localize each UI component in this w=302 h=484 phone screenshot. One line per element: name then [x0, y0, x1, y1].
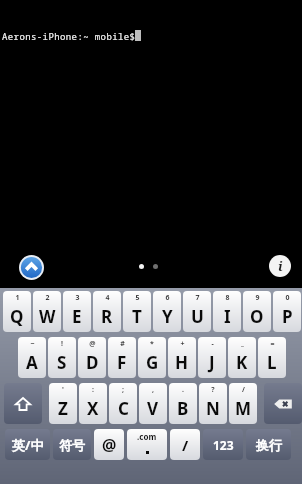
- staticText: B: [177, 397, 189, 420]
- staticText: H: [175, 351, 189, 374]
- button[interactable]: A: [18, 337, 46, 378]
- staticText: 3: [75, 293, 80, 303]
- button[interactable]: H: [168, 337, 196, 378]
- button[interactable]: S: [48, 337, 76, 378]
- staticText: 0: [285, 293, 290, 303]
- button[interactable]: C: [109, 383, 137, 424]
- staticText: Z: [58, 397, 68, 420]
- staticText: V: [147, 397, 159, 420]
- staticText: *: [150, 339, 154, 349]
- staticText: F: [117, 351, 127, 374]
- button[interactable]: F: [108, 337, 136, 378]
- staticText: D: [86, 351, 99, 374]
- staticText: /: [182, 435, 189, 455]
- staticText: 9: [255, 293, 260, 303]
- button[interactable]: .com: [127, 429, 167, 460]
- staticText: 符号: [59, 437, 85, 453]
- staticText: 8: [225, 293, 230, 303]
- button[interactable]: @: [94, 429, 124, 460]
- staticText: Y: [162, 305, 173, 328]
- staticText: U: [191, 305, 204, 328]
- staticText: .: [182, 385, 184, 395]
- staticText: G: [146, 351, 159, 374]
- button[interactable]: 123: [203, 429, 243, 460]
- staticText: M: [235, 397, 252, 420]
- button[interactable]: J: [198, 337, 226, 378]
- staticText: _: [241, 339, 244, 349]
- staticText: J: [209, 351, 215, 374]
- button[interactable]: Shift: [4, 383, 42, 424]
- button[interactable]: D: [78, 337, 106, 378]
- staticText: 4: [105, 293, 110, 303]
- staticText: 2: [45, 293, 50, 303]
- staticText: N: [206, 397, 220, 420]
- button[interactable]: T: [123, 291, 151, 332]
- button[interactable]: G: [138, 337, 166, 378]
- button[interactable]: K: [228, 337, 256, 378]
- staticText: .com: [137, 431, 157, 442]
- button[interactable]: I: [213, 291, 241, 332]
- staticText: Q: [10, 305, 24, 328]
- button[interactable]: Backspace: [264, 383, 302, 424]
- staticText: 123: [213, 437, 234, 453]
- staticText: S: [57, 351, 67, 374]
- button[interactable]: M: [229, 383, 257, 424]
- staticText: ': [62, 385, 64, 395]
- staticText: I: [224, 305, 231, 328]
- button[interactable]: E: [63, 291, 91, 332]
- button[interactable]: O: [243, 291, 271, 332]
- staticText: 英/中: [12, 436, 44, 454]
- staticText: +: [180, 339, 185, 349]
- button[interactable]: U: [183, 291, 211, 332]
- staticText: K: [236, 351, 248, 374]
- button[interactable]: N: [199, 383, 227, 424]
- button[interactable]: X: [79, 383, 107, 424]
- staticText: ?: [211, 385, 215, 395]
- staticText: @: [102, 434, 117, 456]
- staticText: =: [270, 339, 275, 349]
- staticText: 6: [165, 293, 170, 303]
- staticText: 7: [195, 293, 200, 303]
- button[interactable]: B: [169, 383, 197, 424]
- button[interactable]: W: [33, 291, 61, 332]
- button[interactable]: Info: [269, 255, 291, 277]
- button[interactable]: V: [139, 383, 167, 424]
- staticText: 换行: [256, 437, 282, 453]
- staticText: 5: [135, 293, 140, 303]
- button[interactable]: Y: [153, 291, 181, 332]
- staticText: R: [101, 305, 113, 328]
- staticText: P: [282, 305, 293, 328]
- staticText: -: [211, 339, 214, 349]
- staticText: W: [39, 305, 56, 328]
- staticText: @: [89, 339, 96, 349]
- staticText: #: [120, 339, 125, 349]
- staticText: T: [132, 305, 142, 328]
- button[interactable]: R: [93, 291, 121, 332]
- staticText: L: [267, 351, 277, 374]
- staticText: ~: [30, 339, 35, 349]
- staticText: E: [72, 305, 82, 328]
- button[interactable]: 符号: [53, 429, 91, 460]
- staticText: /: [242, 385, 245, 395]
- button[interactable]: Z: [49, 383, 77, 424]
- staticText: :: [92, 385, 94, 395]
- button[interactable]: 英/中: [5, 429, 50, 460]
- button[interactable]: 换行: [246, 429, 291, 460]
- button[interactable]: L: [258, 337, 286, 378]
- staticText: O: [250, 305, 264, 328]
- staticText: !: [61, 339, 63, 349]
- staticText: X: [87, 397, 99, 420]
- button[interactable]: P: [273, 291, 301, 332]
- button[interactable]: Scroll up: [19, 255, 44, 280]
- staticText: ;: [122, 385, 124, 395]
- staticText: Aerons-iPhone:~ mobile$: [2, 30, 136, 42]
- staticText: C: [118, 397, 129, 420]
- button[interactable]: Q: [3, 291, 31, 332]
- staticText: 1: [15, 293, 20, 303]
- staticText: ,: [152, 385, 154, 395]
- staticText: i: [278, 257, 283, 275]
- button[interactable]: /: [170, 429, 200, 460]
- staticText: A: [26, 351, 38, 374]
